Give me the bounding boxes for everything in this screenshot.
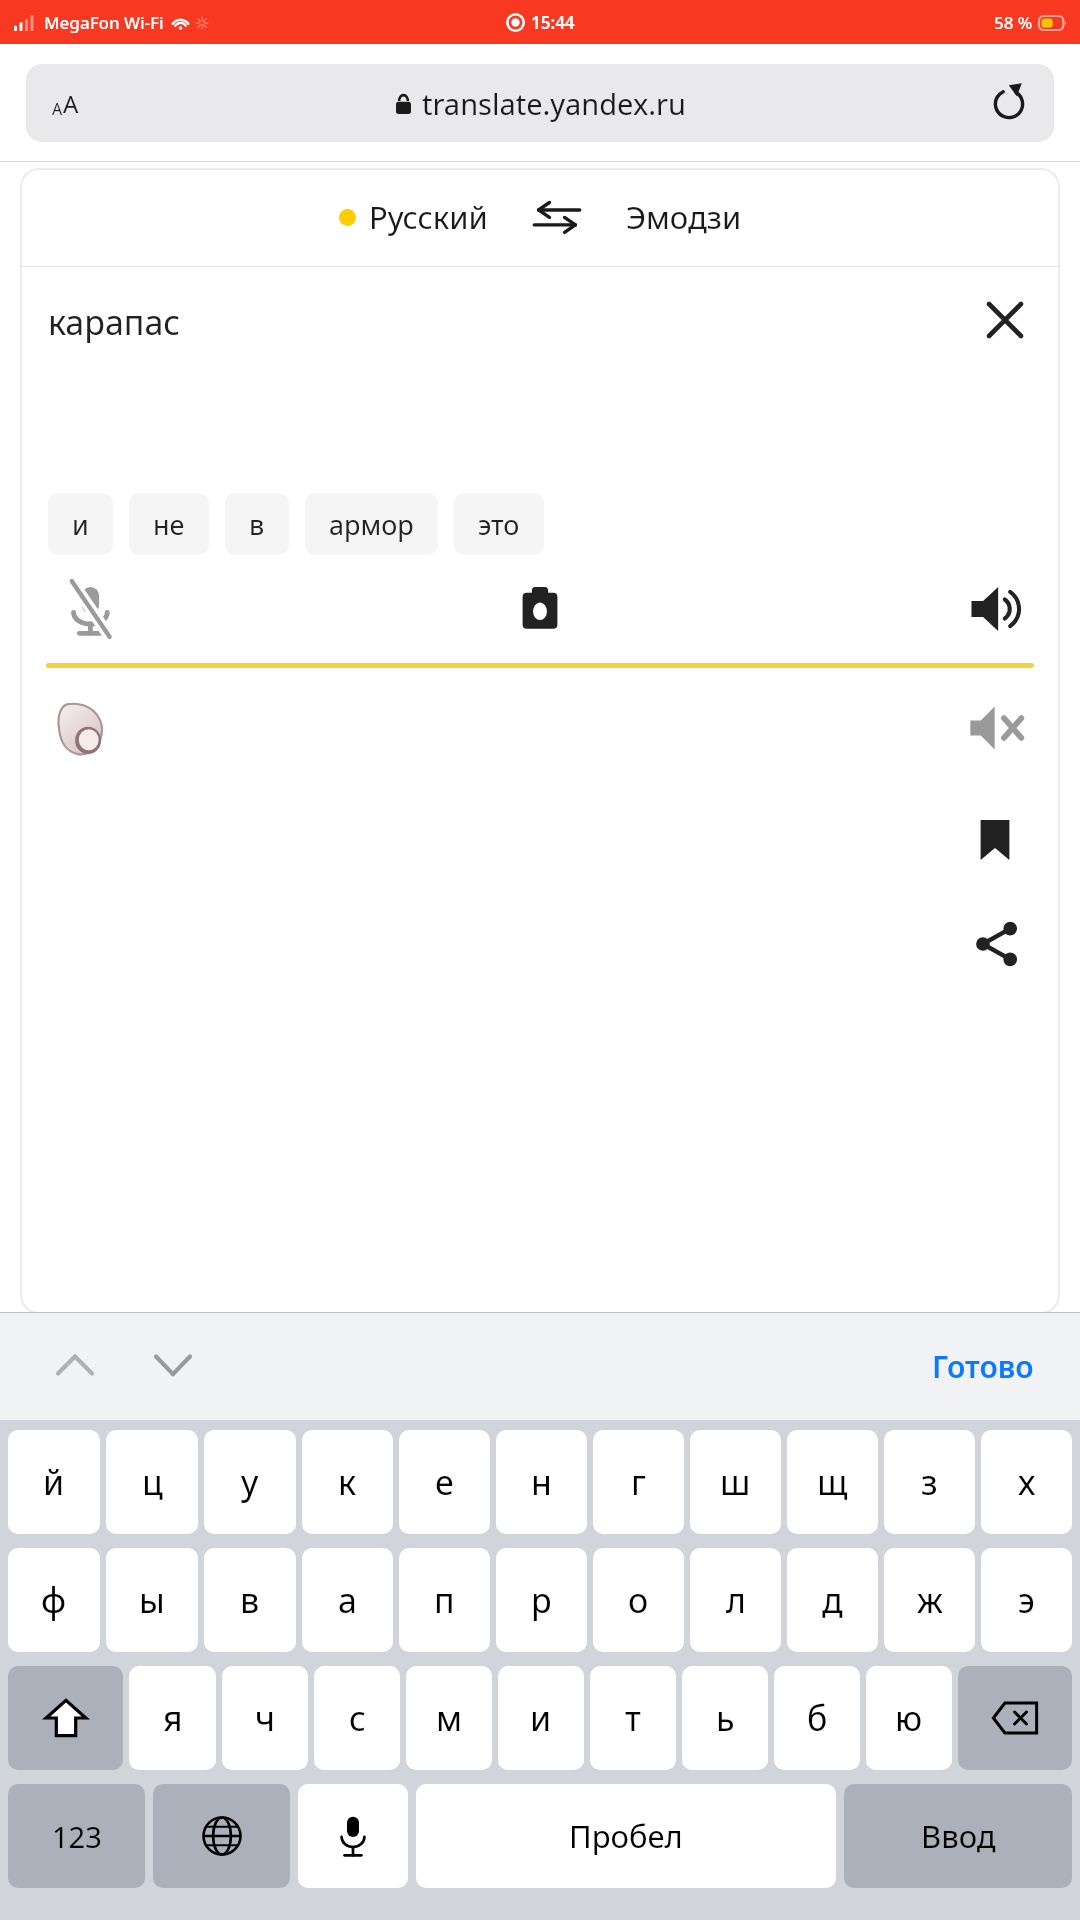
button[interactable]: Listen source xyxy=(968,580,1026,638)
button[interactable]: ч xyxy=(222,1666,308,1770)
button[interactable]: Reload xyxy=(986,80,1032,126)
button[interactable]: ш xyxy=(690,1430,781,1534)
button[interactable]: о xyxy=(593,1548,684,1652)
staticText: с xyxy=(349,1695,366,1741)
staticText: о xyxy=(628,1577,649,1623)
staticText: A xyxy=(63,87,79,120)
button[interactable]: н xyxy=(496,1430,587,1534)
button[interactable]: Ввод xyxy=(844,1784,1072,1888)
staticText: и xyxy=(72,506,89,543)
button[interactable]: х xyxy=(981,1430,1072,1534)
button[interactable]: я xyxy=(129,1666,216,1770)
staticText: э xyxy=(1018,1577,1035,1623)
button[interactable]: Готово xyxy=(922,1336,1044,1397)
button[interactable]: Previous field xyxy=(44,1335,106,1397)
staticText: ю xyxy=(895,1695,923,1741)
button[interactable]: Swap languages xyxy=(530,195,584,239)
button[interactable]: в xyxy=(204,1548,296,1652)
staticText: в xyxy=(249,506,265,543)
button[interactable]: Change keyboard xyxy=(153,1784,290,1888)
button[interactable]: т xyxy=(590,1666,676,1770)
button[interactable]: армор xyxy=(305,493,438,555)
button[interactable]: Backspace xyxy=(958,1666,1072,1770)
button[interactable]: д xyxy=(787,1548,878,1652)
staticText: д xyxy=(822,1577,843,1623)
staticText: щ xyxy=(817,1459,848,1505)
button[interactable]: это xyxy=(454,493,544,555)
staticText: 58 % xyxy=(994,11,1033,34)
button[interactable]: ю xyxy=(866,1666,952,1770)
button[interactable]: Listen translation xyxy=(968,699,1026,757)
button[interactable]: и xyxy=(498,1666,584,1770)
button[interactable]: ц xyxy=(106,1430,198,1534)
staticText: ж xyxy=(917,1577,943,1623)
staticText: ч xyxy=(255,1695,276,1741)
staticText: б xyxy=(807,1695,828,1741)
button[interactable]: ф xyxy=(8,1548,100,1652)
button[interactable]: м xyxy=(406,1666,492,1770)
button[interactable]: 123 xyxy=(8,1784,145,1888)
button[interactable]: э xyxy=(981,1548,1072,1652)
button[interactable]: й xyxy=(8,1430,100,1534)
staticText: й xyxy=(43,1459,65,1505)
staticText: ф xyxy=(41,1577,67,1623)
staticText: Ввод xyxy=(921,1815,996,1857)
button[interactable]: Text size xyxy=(26,64,1054,142)
staticText: е xyxy=(435,1459,454,1505)
button[interactable]: Dictation xyxy=(298,1784,408,1888)
button[interactable]: с xyxy=(314,1666,400,1770)
button[interactable]: п xyxy=(399,1548,490,1652)
staticText: A xyxy=(52,98,63,120)
button[interactable]: не xyxy=(129,493,209,555)
button[interactable]: Shift xyxy=(8,1666,123,1770)
button[interactable]: б xyxy=(774,1666,860,1770)
button[interactable]: Share xyxy=(968,915,1026,973)
button[interactable]: ж xyxy=(884,1548,975,1652)
staticText: Готово xyxy=(932,1346,1034,1387)
staticText: п xyxy=(434,1577,455,1623)
staticText: н xyxy=(531,1459,552,1505)
button[interactable]: в xyxy=(225,493,289,555)
staticText: не xyxy=(153,506,185,543)
button[interactable]: щ xyxy=(787,1430,878,1534)
button[interactable]: Voice input off xyxy=(62,580,120,638)
staticText: р xyxy=(531,1577,552,1623)
staticText: армор xyxy=(329,506,414,543)
button[interactable]: ы xyxy=(106,1548,198,1652)
button[interactable]: Text size xyxy=(52,87,79,120)
staticText: к xyxy=(338,1459,357,1505)
staticText: 15:44 xyxy=(531,11,575,34)
button[interactable]: Bookmark xyxy=(966,811,1024,869)
button[interactable]: Camera input xyxy=(511,580,569,638)
staticText: ш xyxy=(720,1459,751,1505)
staticText: Русский xyxy=(369,196,488,238)
staticText: ь xyxy=(716,1695,735,1741)
staticText: з xyxy=(921,1459,938,1505)
button[interactable]: з xyxy=(884,1430,975,1534)
staticText: х xyxy=(1018,1459,1036,1505)
staticText: л xyxy=(726,1577,746,1623)
button[interactable]: Эмодзи xyxy=(620,190,748,244)
staticText: MegaFon Wi-Fi xyxy=(44,11,164,34)
button[interactable]: г xyxy=(593,1430,684,1534)
staticText: карапас xyxy=(48,299,181,345)
staticText: Эмодзи xyxy=(626,196,742,238)
staticText: в xyxy=(240,1577,260,1623)
staticText: у xyxy=(241,1459,259,1505)
staticText: г xyxy=(631,1459,646,1505)
button[interactable]: Clear xyxy=(976,291,1034,349)
button[interactable]: и xyxy=(48,493,113,555)
staticText: я xyxy=(163,1695,183,1741)
staticText: это xyxy=(478,506,520,543)
button[interactable]: е xyxy=(399,1430,490,1534)
button[interactable]: р xyxy=(496,1548,587,1652)
button[interactable]: у xyxy=(204,1430,296,1534)
staticText: м xyxy=(436,1695,463,1741)
button[interactable]: Пробел xyxy=(416,1784,836,1888)
button[interactable]: ь xyxy=(682,1666,768,1770)
button[interactable]: к xyxy=(302,1430,393,1534)
button[interactable]: Русский xyxy=(333,190,494,244)
button[interactable]: а xyxy=(302,1548,393,1652)
button[interactable]: л xyxy=(690,1548,781,1652)
button[interactable]: Next field xyxy=(142,1335,204,1397)
